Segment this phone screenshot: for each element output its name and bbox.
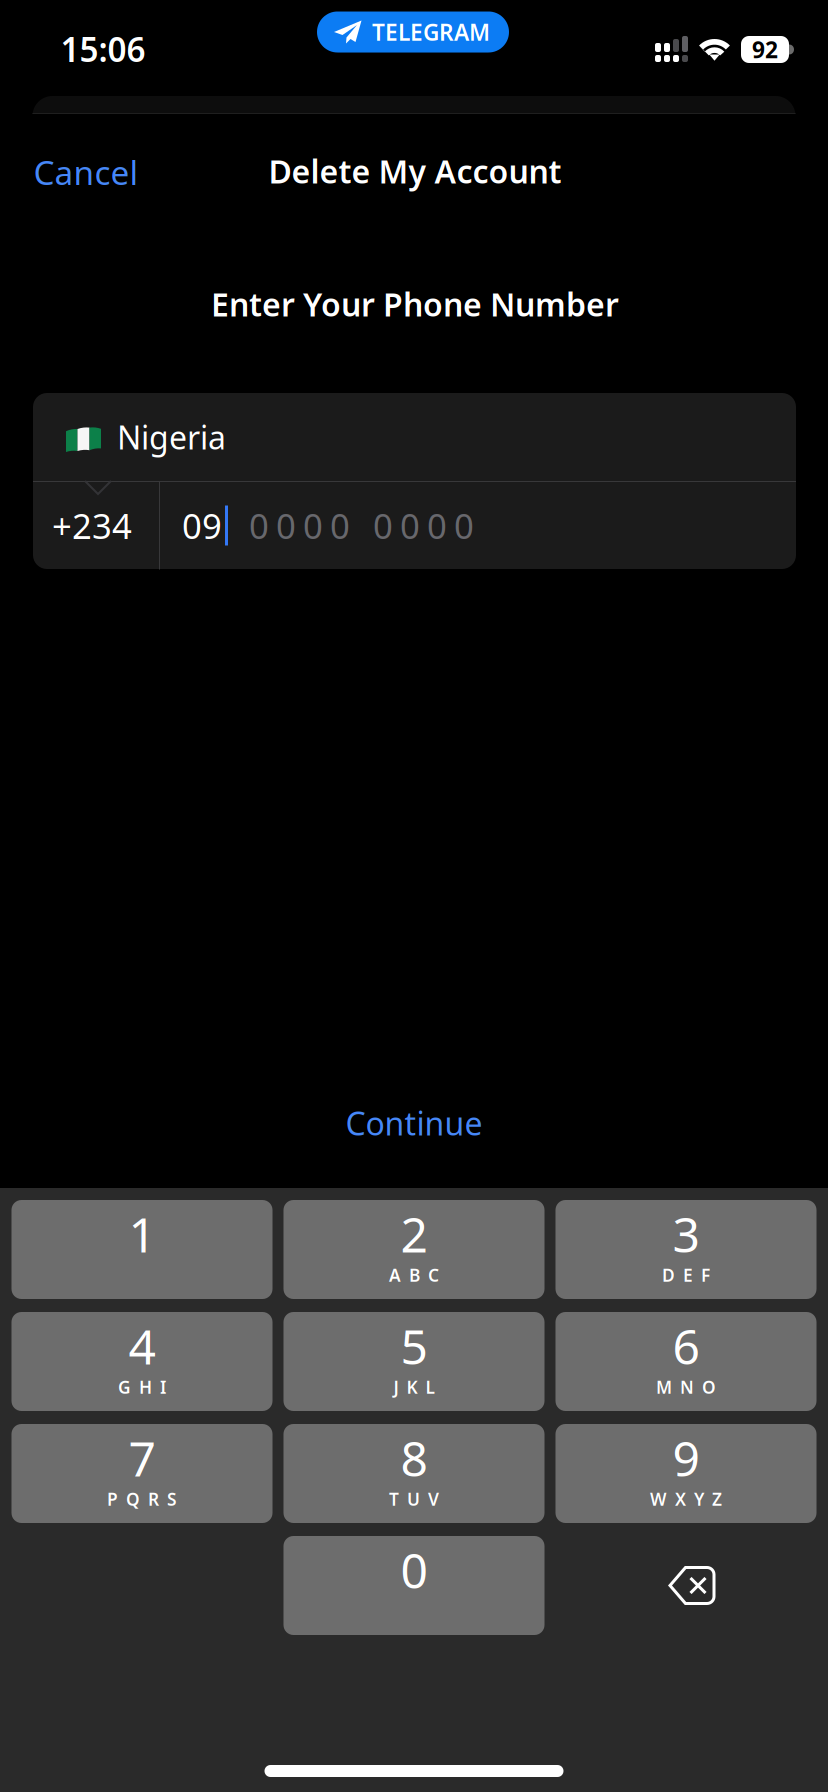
button[interactable]: 6 <box>555 1312 816 1411</box>
button[interactable]: +234 <box>33 482 796 569</box>
button[interactable]: 1 <box>11 1200 272 1299</box>
button[interactable]: Delete <box>555 1536 816 1635</box>
button[interactable]: 4 <box>11 1312 272 1411</box>
staticText: 6 <box>672 1314 699 1378</box>
button[interactable]: Nigeria <box>33 393 796 481</box>
button[interactable]: 9 <box>555 1424 816 1523</box>
button[interactable]: Continue <box>305 1082 522 1164</box>
staticText: 3 <box>672 1202 699 1266</box>
staticText: ABC <box>389 1263 439 1286</box>
staticText: GHI <box>118 1375 166 1398</box>
button[interactable]: 0 <box>283 1536 544 1635</box>
staticText: 09 <box>182 502 222 548</box>
staticText: 5 <box>400 1314 427 1378</box>
button[interactable]: 8 <box>283 1424 544 1523</box>
staticText: Cancel <box>33 150 138 194</box>
staticText: TELEGRAM <box>372 17 490 47</box>
staticText: 1 <box>128 1202 155 1266</box>
staticText: PQRS <box>107 1487 177 1510</box>
staticText: WXYZ <box>650 1487 722 1510</box>
staticText: Continue <box>345 1102 482 1144</box>
button[interactable]: 7 <box>11 1424 272 1523</box>
staticText: DEF <box>662 1263 710 1286</box>
staticText: 2 <box>400 1202 427 1266</box>
staticText: +234 <box>52 502 132 548</box>
button[interactable]: 2 <box>283 1200 544 1299</box>
staticText: MNO <box>656 1375 716 1398</box>
staticText: 7 <box>128 1426 155 1490</box>
button[interactable]: 5 <box>283 1312 544 1411</box>
staticText: 0 <box>400 1538 427 1602</box>
staticText: Nigeria <box>117 416 226 458</box>
button[interactable]: 3 <box>555 1200 816 1299</box>
staticText: Delete My Account <box>268 150 561 192</box>
staticText: TUV <box>389 1487 439 1510</box>
staticText: 8 <box>400 1426 427 1490</box>
staticText: 0000 0000 <box>249 502 474 548</box>
staticText: Enter Your Phone Number <box>211 283 619 325</box>
button[interactable]: Cancel <box>0 128 168 216</box>
staticText: 4 <box>128 1314 155 1378</box>
staticText: 92 <box>752 34 778 64</box>
staticText: 9 <box>672 1426 699 1490</box>
staticText: 15:06 <box>60 27 145 71</box>
staticText: JKL <box>393 1375 434 1398</box>
